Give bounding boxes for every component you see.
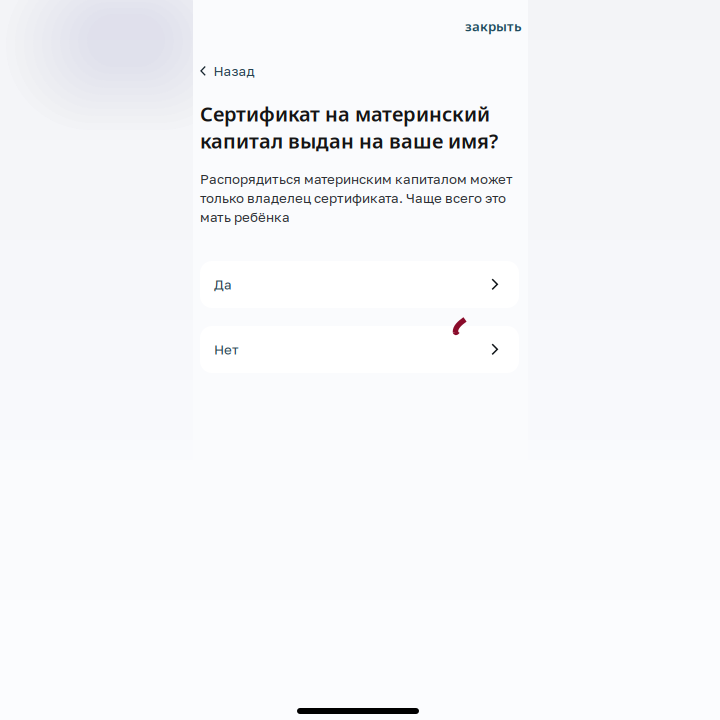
staticText: Назад xyxy=(213,63,254,79)
staticText: Да xyxy=(214,276,232,292)
button[interactable]: Да xyxy=(200,261,519,308)
staticText: Сертификат на материнский капитал выдан … xyxy=(200,100,498,154)
button[interactable]: Назад xyxy=(196,57,258,85)
staticText: закрыть xyxy=(465,17,522,35)
staticText: Распорядиться материнским капиталом може… xyxy=(200,171,513,225)
button[interactable]: Нет xyxy=(200,326,519,373)
staticText: Нет xyxy=(214,341,239,357)
button[interactable]: закрыть xyxy=(456,8,531,44)
